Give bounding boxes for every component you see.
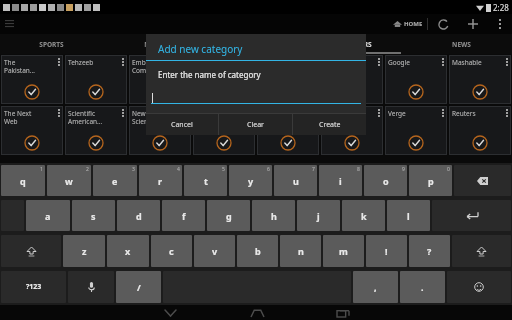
button[interactable]: Recent apps bbox=[328, 305, 358, 320]
button[interactable]: t bbox=[184, 165, 227, 196]
button[interactable]: . bbox=[400, 271, 445, 303]
button[interactable]: The Pakistan… bbox=[1, 55, 63, 104]
staticText: MUSIC bbox=[144, 40, 166, 49]
button[interactable]: w bbox=[47, 165, 91, 196]
staticText: Gizmodo bbox=[324, 109, 352, 118]
staticText: q bbox=[20, 175, 26, 187]
button[interactable]: k bbox=[342, 200, 385, 231]
button[interactable]: Scientific American… bbox=[65, 106, 127, 155]
staticText: Verge bbox=[388, 109, 406, 118]
button[interactable]: Reuters bbox=[449, 106, 511, 155]
button[interactable]: z bbox=[63, 235, 105, 267]
button[interactable]: Slashdot bbox=[193, 55, 255, 104]
button[interactable]: l bbox=[387, 200, 430, 231]
button[interactable]: j bbox=[297, 200, 340, 231]
button[interactable]: Navigation drawer bbox=[0, 15, 18, 33]
button[interactable]: TECH bbox=[206, 34, 308, 54]
button[interactable]: b bbox=[237, 235, 278, 267]
button[interactable]: a bbox=[26, 200, 70, 231]
button[interactable]: Home bbox=[242, 305, 272, 320]
staticText: Create bbox=[319, 120, 341, 130]
staticText: The Pakistan… bbox=[4, 58, 35, 75]
staticText: 6 bbox=[267, 166, 270, 173]
button[interactable]: NEWS bbox=[410, 34, 512, 54]
button[interactable]: y bbox=[229, 165, 272, 196]
button[interactable]: r bbox=[139, 165, 182, 196]
button[interactable]: Cambridge bbox=[321, 55, 383, 104]
staticText: Wired bbox=[260, 58, 278, 67]
button[interactable]: MUSIC bbox=[103, 34, 206, 54]
button[interactable]: g bbox=[207, 200, 250, 231]
button[interactable]: Refresh bbox=[428, 14, 458, 34]
button[interactable]: c bbox=[151, 235, 192, 267]
button[interactable]: Engadget bbox=[257, 106, 319, 155]
button[interactable]: x bbox=[107, 235, 149, 267]
button[interactable]: enter bbox=[432, 200, 511, 231]
button[interactable]: Ars Technica bbox=[193, 106, 255, 155]
button[interactable]: Create bbox=[293, 114, 366, 135]
button[interactable]: ?123 bbox=[1, 271, 66, 303]
button[interactable]: o bbox=[364, 165, 407, 196]
button[interactable]: shift bbox=[452, 235, 511, 267]
button[interactable]: Tehzeeb bbox=[65, 55, 127, 104]
staticText: y bbox=[248, 175, 254, 187]
button[interactable]: , bbox=[353, 271, 398, 303]
button[interactable]: Back bbox=[155, 305, 185, 320]
button[interactable]: Clear bbox=[219, 114, 292, 135]
button[interactable]: ! bbox=[366, 235, 407, 267]
staticText: o bbox=[383, 175, 389, 187]
staticText: i bbox=[339, 175, 342, 187]
staticText: Reuters bbox=[452, 109, 476, 118]
button[interactable]: s bbox=[72, 200, 115, 231]
staticText: 8 bbox=[357, 166, 360, 173]
button[interactable]: d bbox=[117, 200, 160, 231]
button[interactable]: OTHERS bbox=[308, 34, 410, 54]
button[interactable]: New Scientist bbox=[129, 106, 191, 155]
button[interactable]: The Next Web bbox=[1, 106, 63, 155]
button[interactable]: i bbox=[319, 165, 362, 196]
button[interactable]: Add bbox=[458, 14, 488, 34]
staticText: Tehzeeb bbox=[68, 58, 94, 67]
button[interactable]: Gizmodo bbox=[321, 106, 383, 155]
staticText: Engadget bbox=[260, 109, 290, 118]
staticText: a bbox=[45, 210, 51, 222]
staticText: n bbox=[298, 245, 304, 257]
staticText: c bbox=[169, 245, 174, 257]
button[interactable]: HOME bbox=[389, 20, 427, 28]
button[interactable]: u bbox=[274, 165, 317, 196]
staticText: New Scientist bbox=[132, 109, 158, 126]
staticText: f bbox=[182, 210, 186, 222]
staticText: l bbox=[407, 210, 410, 222]
button[interactable]: Google bbox=[385, 55, 447, 104]
staticText: HOME bbox=[404, 20, 423, 28]
button[interactable]: mic bbox=[68, 271, 114, 303]
button[interactable]: h bbox=[252, 200, 295, 231]
button[interactable]: q bbox=[1, 165, 45, 196]
staticText: u bbox=[293, 175, 299, 187]
staticText: ?123 bbox=[26, 282, 42, 292]
button[interactable]: f bbox=[162, 200, 205, 231]
button[interactable]: v bbox=[194, 235, 235, 267]
button[interactable]: p bbox=[409, 165, 452, 196]
button[interactable]: m bbox=[323, 235, 364, 267]
button[interactable]: Embedded Computin… bbox=[129, 55, 191, 104]
button[interactable]: del bbox=[454, 165, 511, 196]
button[interactable]: n bbox=[280, 235, 321, 267]
staticText: 2:28 bbox=[493, 2, 509, 13]
button[interactable]: ? bbox=[409, 235, 450, 267]
staticText: t bbox=[204, 175, 208, 187]
button[interactable]: / bbox=[116, 271, 161, 303]
button[interactable]: Verge bbox=[385, 106, 447, 155]
button[interactable]: shift bbox=[1, 235, 61, 267]
staticText: 7 bbox=[312, 166, 315, 173]
button[interactable]: emoji bbox=[447, 271, 511, 303]
button[interactable]: Cancel bbox=[146, 114, 218, 135]
button[interactable]: More options bbox=[488, 14, 512, 34]
staticText: Google bbox=[388, 58, 410, 67]
button[interactable]: Mashable bbox=[449, 55, 511, 104]
button[interactable]: Wired bbox=[257, 55, 319, 104]
button[interactable]: SPORTS bbox=[0, 34, 103, 54]
button[interactable]: e bbox=[93, 165, 137, 196]
